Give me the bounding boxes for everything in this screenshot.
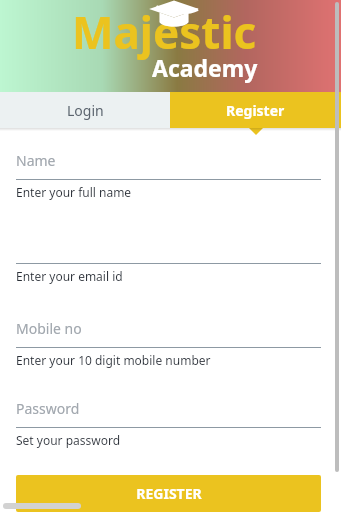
staticText: Password <box>16 399 80 418</box>
staticText: Name <box>16 151 56 170</box>
button[interactable]: Login <box>0 92 170 128</box>
staticText: Register <box>226 101 285 120</box>
staticText: Mobile no <box>16 319 82 338</box>
staticText: Login <box>67 101 104 120</box>
staticText: Enter your 10 digit mobile number <box>16 352 211 368</box>
staticText: Set your password <box>16 432 121 448</box>
button[interactable]: Register <box>170 92 341 128</box>
staticText: Majestic <box>72 2 257 62</box>
staticText: Enter your full name <box>16 184 132 200</box>
staticText: Enter your email id <box>16 268 123 284</box>
staticText: Academy <box>152 52 258 83</box>
staticText: REGISTER <box>136 484 202 503</box>
button[interactable]: REGISTER <box>16 475 321 512</box>
